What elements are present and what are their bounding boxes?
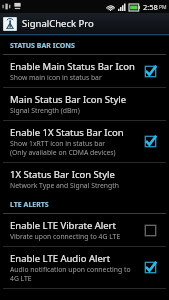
staticText: Signal Strength (dBm) (10, 106, 80, 115)
staticText: Enable LTE Vibrate Alert (10, 219, 116, 232)
button[interactable]: Main Status Bar Icon Style (0, 88, 169, 120)
staticText: (Only available on CDMA devices) (10, 148, 116, 157)
button[interactable]: 1X Status Bar Icon Style (0, 163, 169, 195)
staticText: Show 1xRTT icon in status bar (10, 139, 106, 148)
staticText: Enable Main Status Bar Icon (10, 60, 135, 73)
staticText: PM (159, 4, 167, 11)
staticText: Enable 1X Status Bar Icon (10, 126, 124, 139)
staticText: STATUS BAR ICONS (10, 41, 75, 51)
button[interactable]: Checked (144, 135, 157, 148)
staticText: Vibrate upon connecting to 4G LTE (10, 232, 121, 241)
staticText: Show main icon in status bar (10, 73, 102, 82)
staticText: 1X Status Bar Icon Style (10, 168, 115, 181)
staticText: Enable LTE Audio Alert (10, 252, 111, 265)
staticText: 4G LTE (10, 274, 32, 283)
button[interactable]: Enable Main Status Bar Icon (0, 55, 169, 87)
staticText: Network Type and Signal Strength (10, 181, 119, 190)
staticText: 2:58 (143, 2, 158, 12)
button[interactable]: Unchecked (144, 224, 157, 237)
staticText: Main Status Bar Icon Style (10, 93, 127, 106)
button[interactable]: SignalCheck Pro (0, 13, 169, 34)
staticText: SignalCheck Pro (22, 17, 94, 30)
button[interactable]: Enable LTE Audio Alert (0, 247, 169, 288)
staticText: Audio notification upon connecting to (10, 265, 131, 274)
staticText: LTE ALERTS (10, 200, 49, 210)
button[interactable]: Enable LTE Vibrate Alert (0, 214, 169, 246)
button[interactable]: Checked (144, 65, 157, 78)
button[interactable]: Checked (144, 261, 157, 274)
button[interactable]: Enable 1X Status Bar Icon (0, 121, 169, 162)
